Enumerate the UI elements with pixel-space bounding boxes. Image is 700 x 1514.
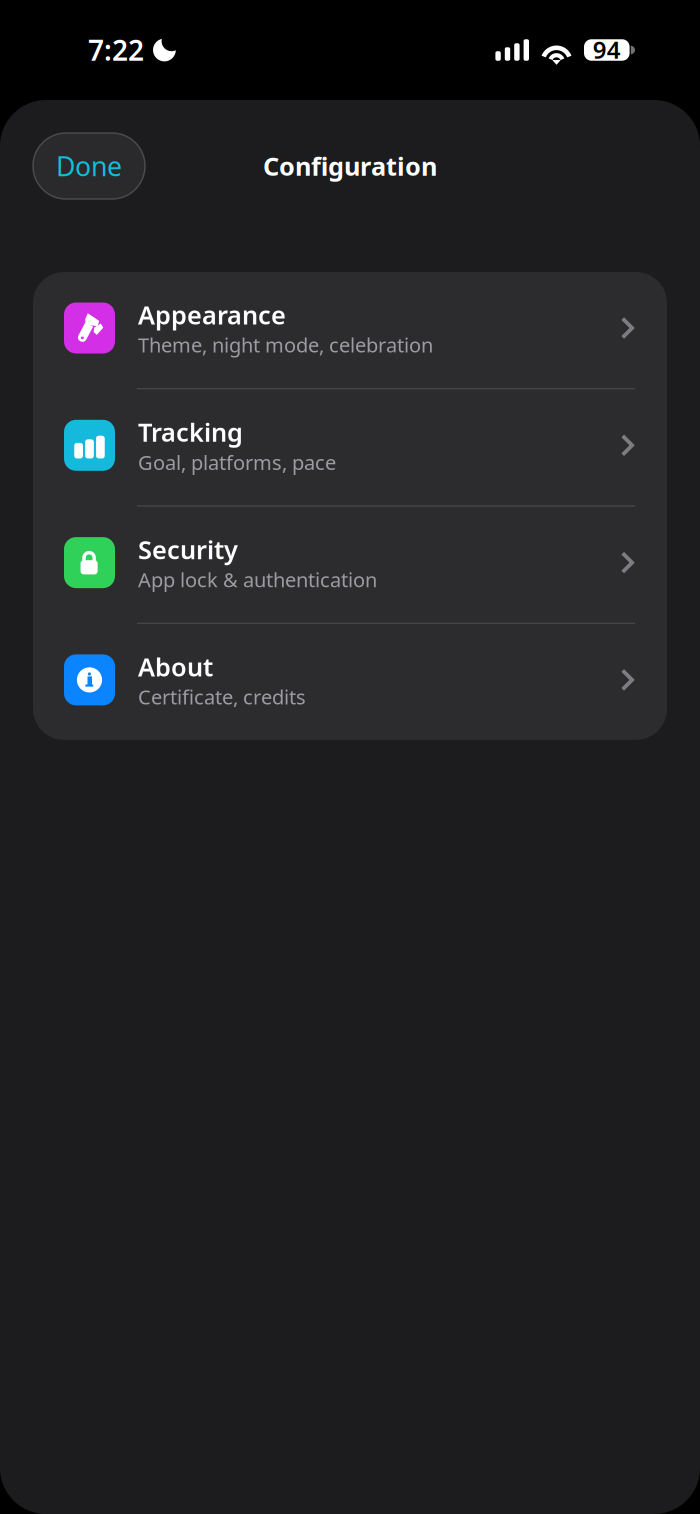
- button[interactable]: Security: [33, 507, 667, 623]
- staticText: App lock & authentication: [138, 566, 377, 593]
- staticText: Certificate, credits: [138, 683, 306, 710]
- staticText: Goal, platforms, pace: [138, 449, 336, 475]
- staticText: Appearance: [138, 298, 286, 331]
- staticText: Security: [138, 532, 238, 566]
- staticText: Done: [56, 148, 122, 184]
- staticText: Theme, night mode, celebration: [138, 331, 433, 358]
- button[interactable]: Tracking: [33, 389, 667, 505]
- staticText: 7:22: [88, 31, 144, 69]
- staticText: Configuration: [263, 149, 437, 183]
- staticText: Tracking: [138, 415, 243, 449]
- button[interactable]: Appearance: [33, 272, 667, 388]
- button[interactable]: Done: [33, 133, 145, 199]
- button[interactable]: About: [33, 624, 667, 740]
- staticText: About: [138, 650, 213, 683]
- staticText: 94: [593, 34, 621, 65]
